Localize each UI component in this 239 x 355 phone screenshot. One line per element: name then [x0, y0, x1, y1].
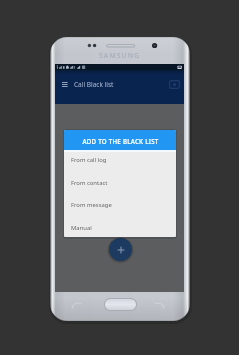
button[interactable]: From contact	[64, 172, 176, 194]
button[interactable]: Back	[153, 301, 168, 312]
staticText: Call Black list	[74, 80, 114, 89]
button[interactable]: ADD TO THE BLACK LIST	[64, 130, 176, 150]
button[interactable]: Settings	[168, 78, 181, 91]
staticText: From contact	[71, 179, 108, 187]
staticText: From call log	[71, 156, 107, 164]
button[interactable]: From message	[64, 194, 176, 216]
staticText: From message	[71, 201, 112, 209]
button[interactable]: Home	[104, 298, 137, 311]
staticText: SAMSUNG	[99, 51, 141, 60]
button[interactable]: Add number to black list	[109, 238, 132, 261]
button[interactable]: Open navigation menu	[59, 78, 71, 90]
button[interactable]: Manual	[64, 217, 176, 237]
staticText: Manual	[71, 224, 92, 232]
button[interactable]: From call log	[64, 149, 176, 171]
button[interactable]: Recent apps	[70, 301, 85, 312]
staticText: ADD TO THE BLACK LIST	[82, 137, 159, 145]
